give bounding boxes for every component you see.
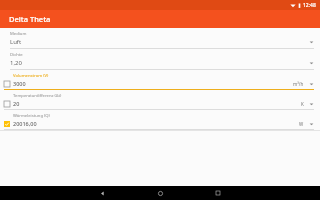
staticText: 20016,00	[13, 120, 299, 127]
staticText: 1,20	[10, 59, 309, 67]
staticText: Volumenstrom (V)	[13, 73, 49, 79]
staticText: 3000	[13, 80, 293, 87]
other: Open dropdown	[309, 82, 314, 86]
button[interactable]: Recent apps	[189, 186, 247, 200]
button[interactable]: Home	[131, 186, 189, 200]
staticText: Dichte	[10, 52, 23, 58]
other: Open dropdown	[309, 122, 314, 126]
button[interactable]: Lock value	[4, 121, 10, 127]
staticText: Luft	[10, 38, 309, 46]
button[interactable]: Back	[73, 186, 131, 200]
staticText: Medium	[10, 31, 27, 37]
button[interactable]: Medium	[0, 28, 320, 49]
other: Open dropdown	[309, 102, 314, 106]
staticText: 12:48	[303, 2, 316, 9]
other: Open dropdown	[309, 40, 314, 44]
staticText: Delta Theta	[9, 14, 51, 24]
button[interactable]: Wärmeleistung (Q)	[0, 110, 320, 130]
staticText: Temperaturdifferenz (Δt)	[13, 93, 62, 99]
staticText: m³/h	[293, 81, 304, 87]
staticText: Wärmeleistung (Q)	[13, 113, 50, 119]
button[interactable]: Lock value	[4, 101, 10, 107]
staticText: K	[301, 101, 304, 107]
button[interactable]: Lock value	[4, 81, 10, 87]
other: Open dropdown	[309, 61, 314, 65]
staticText: W	[299, 121, 304, 127]
button[interactable]: Dichte	[0, 49, 320, 70]
button[interactable]: Volumenstrom (V)	[0, 70, 320, 90]
staticText: 20	[13, 100, 301, 107]
button[interactable]: Temperaturdifferenz (Δt)	[0, 90, 320, 110]
